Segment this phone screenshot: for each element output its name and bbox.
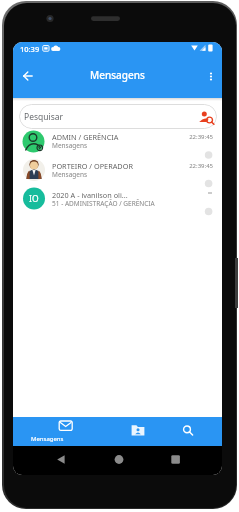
button[interactable]	[201, 66, 221, 86]
button[interactable]: Mensagens	[13, 417, 82, 446]
staticText: ADMIN / GERÊNCIA	[52, 132, 119, 142]
button[interactable]	[18, 66, 38, 86]
staticText: PORTEIRO / OPERADOR	[52, 161, 133, 171]
staticText: Mensagens	[52, 141, 88, 150]
staticText: 51 - ADMINISTRAÇÃO / GERÊNCIA	[52, 199, 155, 208]
staticText: Mensagens	[31, 435, 64, 443]
button[interactable]	[82, 417, 152, 446]
button[interactable]	[152, 417, 222, 446]
staticText: 22:39:45	[152, 133, 213, 141]
button[interactable]: PORTEIRO / OPERADOR	[13, 158, 222, 187]
staticText: Pesquisar	[24, 111, 64, 123]
staticText: 10:39	[20, 44, 40, 54]
staticText: 22:39:45	[152, 162, 213, 170]
button[interactable]: Pesquisar	[19, 104, 217, 129]
button[interactable]: ADMIN / GERÊNCIA	[13, 129, 222, 158]
staticText: 2020 A - ivanilson oli...	[52, 190, 128, 200]
staticText: IO	[29, 193, 39, 205]
staticText: Mensagens	[90, 68, 145, 82]
staticText: Mensagens	[52, 170, 88, 179]
button[interactable]: 2020 A - ivanilson oli...	[13, 187, 222, 216]
